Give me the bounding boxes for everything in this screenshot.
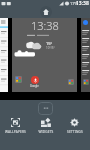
staticText: 13:38 (76, 0, 89, 7)
button[interactable]: Default home page (40, 6, 52, 18)
staticText: WALLPAPERS (5, 130, 26, 134)
staticText: 13:38 (31, 18, 59, 33)
button[interactable]: WALLPAPERS (1, 117, 30, 135)
staticText: 17% (70, 1, 78, 6)
staticText: Google (30, 84, 39, 88)
staticText: SETTINGS (67, 130, 83, 134)
staticText: 15° (46, 41, 53, 46)
button[interactable]: SETTINGS (60, 117, 89, 135)
button[interactable]: Next page (81, 18, 90, 92)
button[interactable]: Home page preview (12, 18, 77, 92)
staticText: WIDGETS (38, 130, 54, 134)
button[interactable]: Voice search (31, 76, 39, 84)
button[interactable]: Pages (38, 102, 53, 115)
button[interactable]: WIDGETS (31, 117, 60, 135)
staticText: 10°/5° (46, 46, 55, 50)
button[interactable]: Google feed page (0, 18, 8, 92)
